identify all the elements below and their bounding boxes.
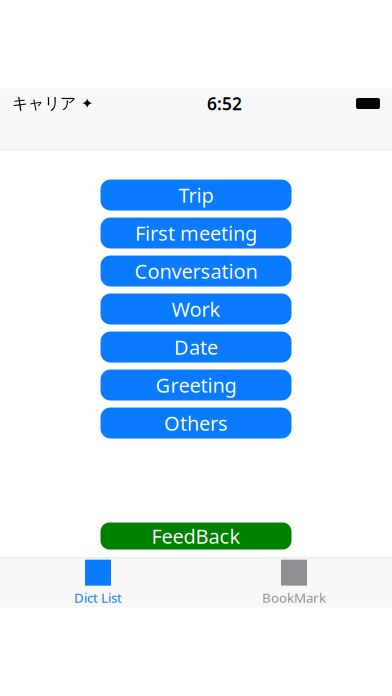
button[interactable]: Conversation	[100, 255, 291, 286]
button[interactable]: BookMark	[196, 558, 392, 607]
staticText: Conversation	[134, 258, 257, 284]
staticText: 6:52	[207, 92, 242, 115]
button[interactable]: Date	[100, 331, 291, 362]
staticText: Date	[174, 334, 218, 360]
button[interactable]: Greeting	[100, 369, 291, 400]
staticText: ✦	[81, 95, 93, 112]
staticText: FeedBack	[151, 523, 240, 549]
staticText: First meeting	[135, 220, 257, 246]
staticText: Others	[164, 410, 228, 436]
staticText: Greeting	[155, 372, 236, 398]
button[interactable]: Work	[100, 293, 291, 324]
staticText: BookMark	[262, 589, 326, 606]
button[interactable]: Trip	[100, 179, 291, 210]
button[interactable]: Others	[100, 407, 291, 438]
staticText: キャリア	[12, 94, 76, 113]
staticText: Dict List	[74, 589, 122, 606]
staticText: Trip	[178, 182, 213, 208]
button[interactable]: Dict List	[0, 558, 196, 607]
staticText: Work	[171, 296, 220, 322]
button[interactable]: First meeting	[100, 217, 291, 248]
button[interactable]: FeedBack	[100, 522, 291, 549]
